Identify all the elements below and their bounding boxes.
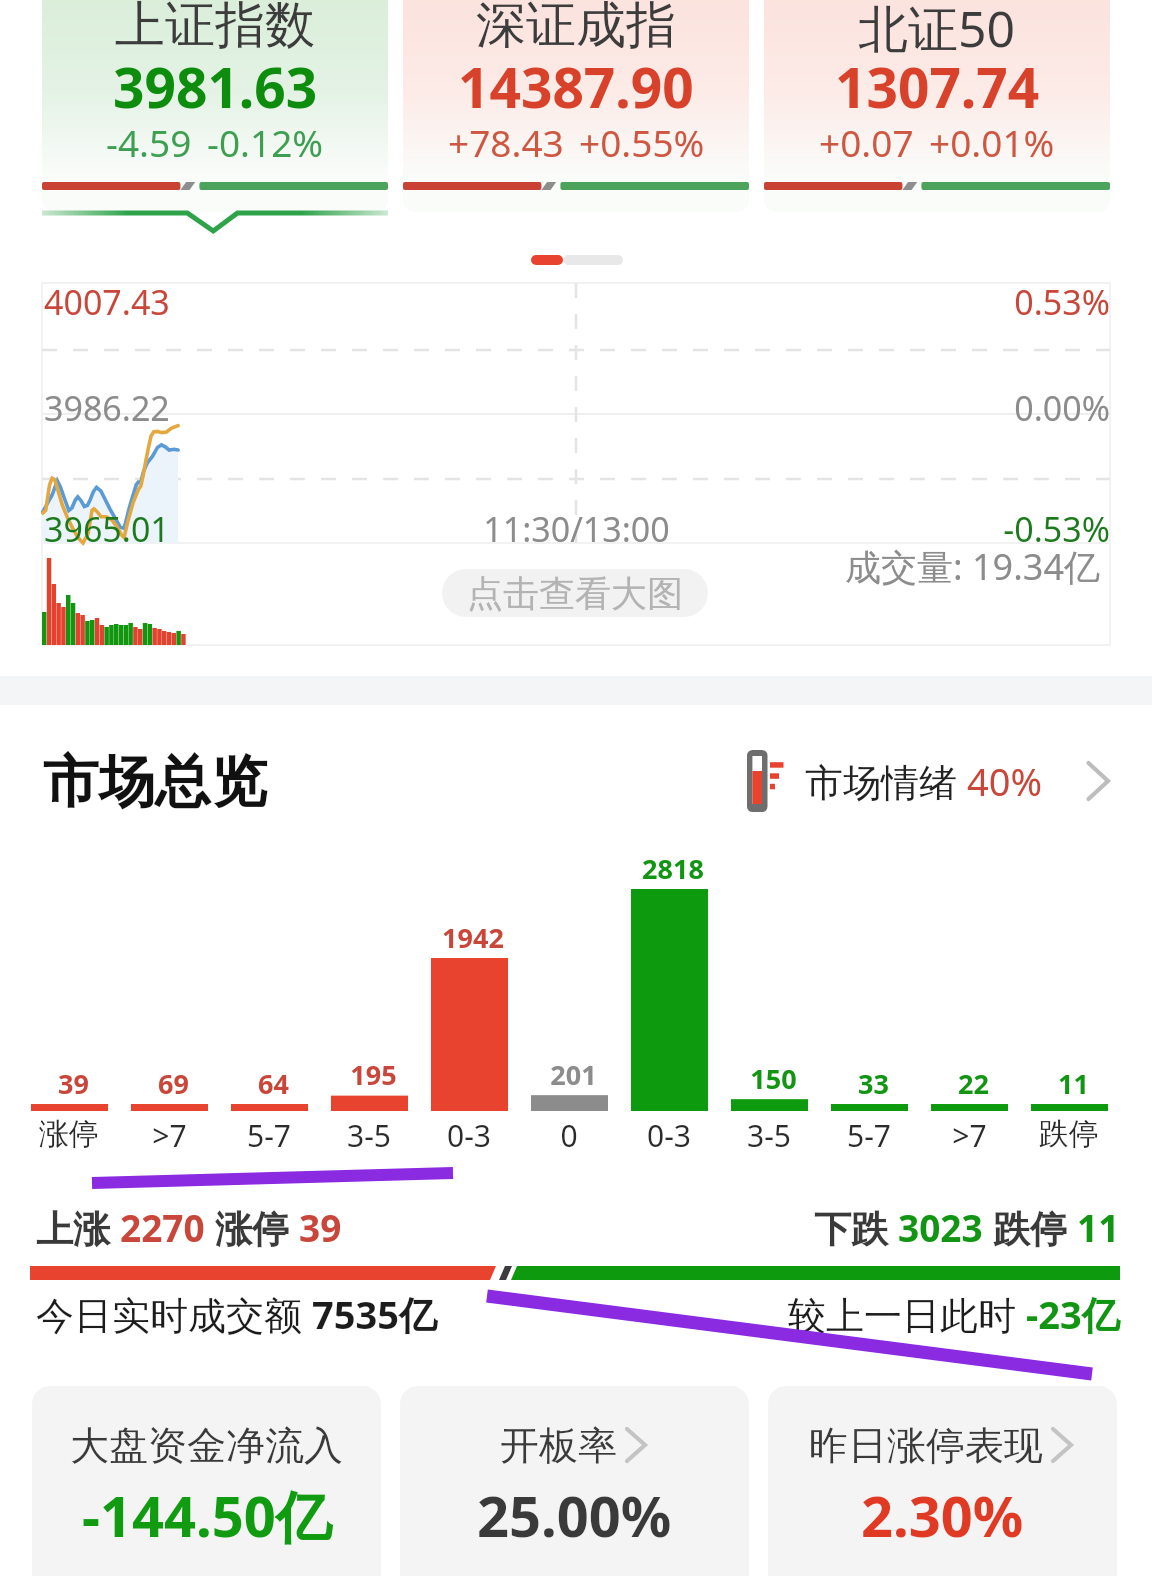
staticText: 3981.63 [113,49,318,124]
staticText: 3023 [898,1202,993,1252]
button[interactable]: 点击查看大图 [442,569,708,617]
staticText: -0.12% [207,117,324,167]
staticText: 2818 [642,850,704,887]
button[interactable]: 上证指数 [42,0,388,212]
staticText: 市场情绪 [805,755,967,807]
staticText: -144.50亿 [82,1477,332,1553]
other: 市场情绪 [747,750,785,812]
button[interactable]: 开板率 [400,1386,749,1576]
staticText: 跌停 [993,1202,1077,1253]
staticText: 今日实时成交额 [36,1288,312,1340]
staticText: 195 [350,1056,397,1093]
staticText: 4007.43 [44,279,170,325]
staticText: 150 [750,1060,797,1097]
staticText: 上涨 [36,1202,120,1253]
staticText: 1307.74 [835,49,1040,124]
staticText: 39 [58,1065,89,1102]
staticText: 40% [967,755,1043,807]
staticText: >7 [952,1115,987,1156]
staticText: 北证50 [858,0,1016,62]
staticText: 成交量: 19.34亿 [844,542,1100,591]
staticText: 涨停 [39,1115,99,1153]
staticText: 0-3 [447,1115,491,1156]
button[interactable]: 大盘资金净流入 [32,1386,381,1576]
staticText: 5-7 [247,1115,291,1156]
staticText: 0.53% [1014,279,1110,325]
staticText: 3986.22 [44,385,170,431]
staticText: 较上一日此时 [788,1288,1026,1340]
staticText: 3-5 [747,1115,791,1156]
staticText: 201 [550,1056,597,1093]
staticText: 昨日涨停表现 [809,1421,1043,1470]
staticText: 0 [560,1115,578,1156]
staticText: 大盘资金净流入 [70,1421,343,1470]
staticText: +0.01% [929,117,1055,167]
staticText: 3-5 [347,1115,391,1156]
staticText: 11 [1058,1065,1089,1102]
button[interactable]: 市场情绪 [747,750,1110,812]
staticText: 7535亿 [312,1288,437,1340]
staticText: 22 [958,1065,989,1102]
staticText: >7 [152,1115,187,1156]
staticText: 2270 [120,1202,215,1252]
staticText: +0.55% [579,117,705,167]
staticText: 11:30/13:00 [483,506,670,552]
staticText: 开板率 [500,1421,617,1470]
staticText: 点击查看大图 [467,571,683,616]
staticText: 2.30% [861,1477,1024,1553]
staticText: 深证成指 [476,0,676,57]
staticText: 涨停 [215,1202,299,1253]
staticText: 3965.01 [44,506,170,552]
staticText: -0.53% [1003,506,1110,552]
button[interactable]: 北证50 [764,0,1110,212]
staticText: 64 [258,1065,289,1102]
staticText: 跌停 [1039,1115,1099,1153]
staticText: 33 [858,1065,889,1102]
staticText: +0.07 [819,117,914,167]
staticText: 1942 [442,919,504,956]
staticText: -4.59 [106,117,192,167]
staticText: 5-7 [847,1115,891,1156]
staticText: 14387.90 [458,49,694,124]
staticText: 0-3 [647,1115,691,1156]
button[interactable]: 深证成指 [403,0,749,212]
staticText: 25.00% [477,1477,672,1553]
staticText: -23亿 [1026,1288,1120,1340]
staticText: 11 [1077,1202,1120,1252]
staticText: 39 [299,1202,342,1252]
button[interactable]: 昨日涨停表现 [768,1386,1117,1576]
staticText: 市场总览 [43,747,267,818]
staticText: 0.00% [1014,385,1110,431]
staticText: 上证指数 [115,0,315,57]
staticText: 下跌 [814,1202,898,1253]
staticText: +78.43 [448,117,564,167]
staticText: 69 [158,1065,189,1102]
